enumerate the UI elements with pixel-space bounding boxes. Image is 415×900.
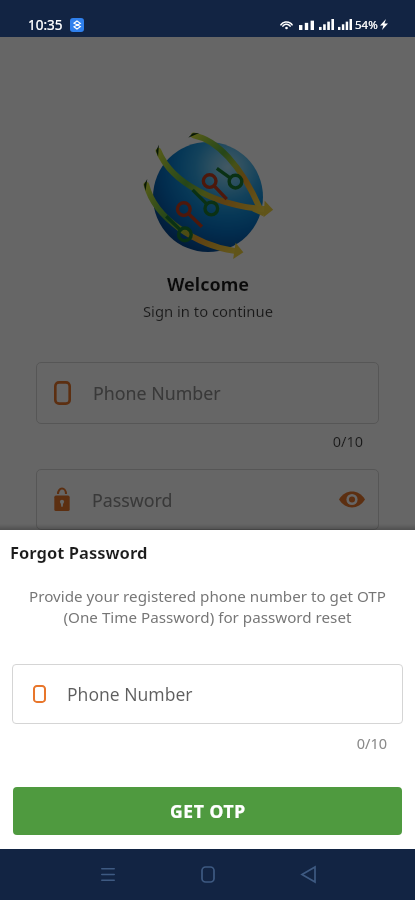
staticText: Provide your registered phone number to …: [10, 586, 405, 628]
button[interactable]: Password: [36, 469, 379, 530]
button[interactable]: Phone Number: [12, 664, 403, 724]
staticText: Welcome: [167, 272, 249, 297]
staticText: Phone Number: [67, 682, 193, 706]
button[interactable]: Back: [282, 849, 334, 900]
staticText: Phone Number: [93, 381, 221, 405]
button[interactable]: Phone Number: [36, 362, 379, 424]
staticText: 54%: [355, 17, 378, 33]
button[interactable]: Home: [182, 849, 234, 900]
staticText: 0/10: [0, 431, 363, 451]
staticText: GET OTP: [170, 799, 246, 823]
staticText: 0/10: [0, 733, 387, 753]
staticText: Sign in to continue: [143, 301, 273, 321]
button[interactable]: GET OTP: [13, 787, 402, 835]
button[interactable]: Recents: [82, 849, 134, 900]
staticText: Forgot Password: [10, 541, 148, 563]
staticText: Password: [92, 488, 173, 512]
staticText: 10:35: [28, 16, 63, 34]
